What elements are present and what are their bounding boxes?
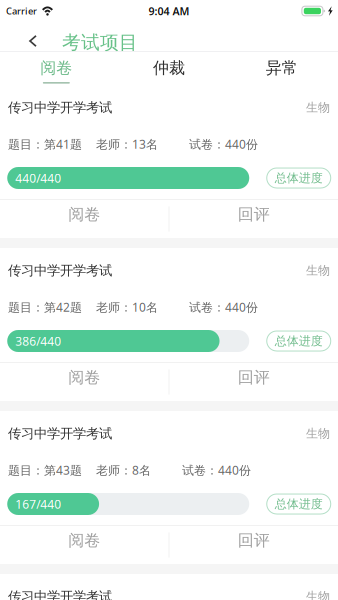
staticText: 440/440 bbox=[15, 170, 61, 186]
staticText: 回评 bbox=[238, 368, 270, 387]
staticText: 老师：13名 bbox=[96, 136, 158, 152]
staticText: 386/440 bbox=[15, 333, 61, 349]
staticText: 回评 bbox=[238, 205, 270, 224]
button[interactable]: 回评 bbox=[169, 200, 338, 238]
button[interactable]: 回评 bbox=[169, 363, 338, 401]
staticText: 阅卷 bbox=[68, 368, 100, 387]
staticText: 生物 bbox=[306, 263, 330, 278]
button[interactable]: 仲裁 bbox=[113, 52, 225, 85]
button[interactable]: 总体进度 bbox=[267, 168, 331, 188]
staticText: 题目：第41题 bbox=[8, 136, 82, 152]
staticText: 9:04 AM bbox=[148, 4, 189, 18]
staticText: 阅卷 bbox=[68, 531, 100, 550]
staticText: 传习中学开学考试 bbox=[8, 99, 112, 116]
staticText: 生物 bbox=[306, 426, 330, 441]
button[interactable]: 异常 bbox=[225, 52, 338, 85]
button[interactable]: 回评 bbox=[169, 526, 338, 564]
button[interactable]: 阅卷 bbox=[0, 200, 169, 238]
button[interactable]: 总体进度 bbox=[267, 331, 331, 351]
staticText: 阅卷 bbox=[40, 58, 72, 78]
button[interactable]: 阅卷 bbox=[0, 52, 113, 85]
staticText: 仲裁 bbox=[153, 58, 185, 78]
staticText: 试卷：440份 bbox=[189, 136, 258, 152]
button[interactable]: 总体进度 bbox=[267, 494, 331, 514]
staticText: 试卷：440份 bbox=[189, 299, 258, 315]
staticText: 考试项目 bbox=[62, 31, 138, 54]
staticText: 生物 bbox=[306, 100, 330, 115]
staticText: 总体进度 bbox=[275, 497, 323, 511]
button[interactable]: Back bbox=[22, 28, 44, 57]
staticText: 传习中学开学考试 bbox=[8, 262, 112, 279]
staticText: 试卷：440份 bbox=[182, 462, 251, 478]
staticText: 题目：第42题 bbox=[8, 299, 82, 315]
staticText: 异常 bbox=[266, 58, 298, 78]
staticText: Carrier bbox=[6, 5, 37, 17]
staticText: 题目：第43题 bbox=[8, 462, 82, 478]
staticText: 老师：10名 bbox=[96, 299, 158, 315]
staticText: 传习中学开学考试 bbox=[8, 588, 112, 600]
staticText: 总体进度 bbox=[275, 334, 323, 348]
button[interactable]: 阅卷 bbox=[0, 526, 169, 564]
staticText: 167/440 bbox=[15, 496, 61, 512]
button[interactable]: 阅卷 bbox=[0, 363, 169, 401]
staticText: 传习中学开学考试 bbox=[8, 425, 112, 442]
staticText: 老师：8名 bbox=[96, 462, 151, 478]
staticText: 阅卷 bbox=[68, 205, 100, 224]
staticText: 回评 bbox=[238, 531, 270, 550]
staticText: 总体进度 bbox=[275, 171, 323, 185]
staticText: 生物 bbox=[306, 589, 330, 600]
